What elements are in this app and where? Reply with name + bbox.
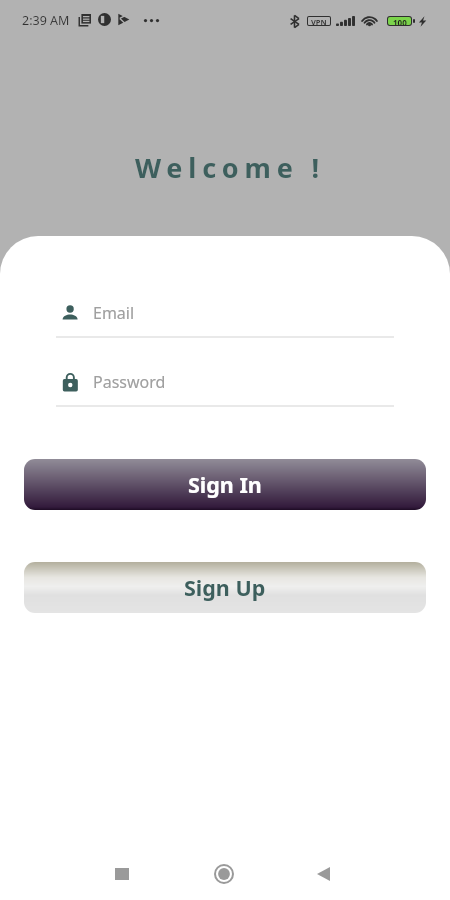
button[interactable]: Home (200, 850, 248, 898)
button[interactable]: Email (56, 295, 394, 329)
button[interactable]: Sign In (24, 459, 426, 510)
button[interactable]: Password (56, 364, 394, 398)
staticText: Sign In (188, 470, 262, 499)
button[interactable]: Recents (98, 850, 146, 898)
staticText: 2:39 AM (22, 12, 70, 29)
staticText: VPN (311, 17, 327, 25)
staticText: 100 (393, 17, 407, 25)
button[interactable]: Back (299, 850, 347, 898)
button[interactable]: Sign Up (24, 562, 426, 613)
staticText: Sign Up (184, 573, 266, 602)
staticText: Email (93, 302, 135, 324)
staticText: Welcome ! (135, 149, 325, 186)
staticText: Password (93, 371, 166, 393)
